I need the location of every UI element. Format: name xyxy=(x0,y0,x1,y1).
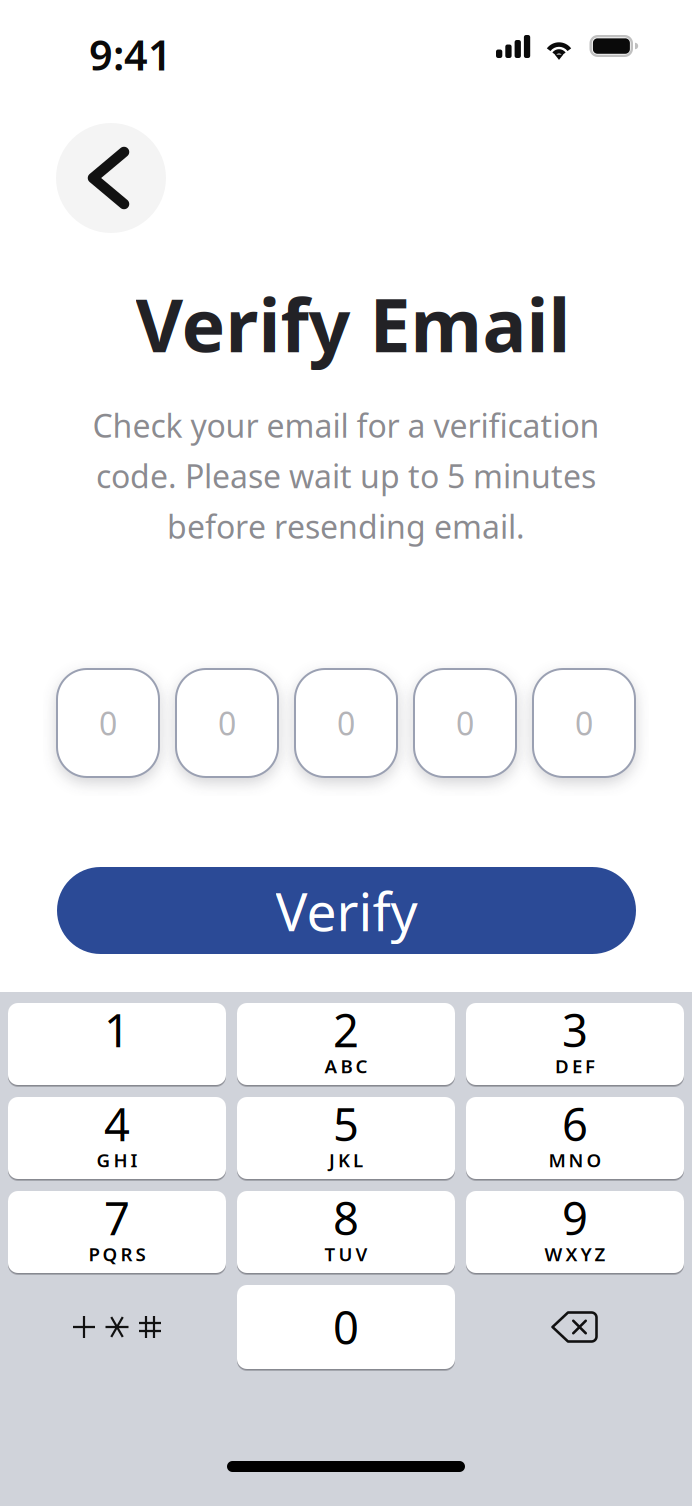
button[interactable]: Back xyxy=(56,123,166,233)
button[interactable]: Plus, star, pound xyxy=(8,1286,226,1368)
staticText: 8 xyxy=(333,1187,359,1248)
staticText: before resending email. xyxy=(167,505,525,547)
staticText: DEF xyxy=(555,1054,595,1078)
button[interactable]: 3 xyxy=(466,1003,684,1085)
button[interactable]: 5 xyxy=(237,1097,455,1179)
staticText: 0 xyxy=(456,702,474,744)
staticText: JKL xyxy=(329,1148,363,1172)
staticText: 0 xyxy=(333,1297,359,1357)
staticText: 5 xyxy=(333,1093,359,1154)
staticText: 3 xyxy=(562,999,588,1060)
button[interactable]: Verify xyxy=(57,867,636,954)
button[interactable]: 7 xyxy=(8,1191,226,1273)
staticText: Verify Email xyxy=(135,275,570,372)
staticText: 4 xyxy=(104,1093,130,1154)
staticText: code. Please wait up to 5 minutes xyxy=(96,454,596,497)
staticText: 0 xyxy=(99,702,117,744)
staticText: Verify xyxy=(275,875,417,946)
staticText: 0 xyxy=(218,702,236,744)
button[interactable]: 4 xyxy=(8,1097,226,1179)
staticText: Check your email for a verification xyxy=(92,404,599,446)
staticText: 9:41 xyxy=(89,27,172,82)
button[interactable]: 1 xyxy=(8,1003,226,1085)
staticText: 6 xyxy=(562,1093,588,1154)
staticText: MNO xyxy=(548,1148,601,1172)
staticText: WXYZ xyxy=(544,1242,605,1266)
button[interactable]: 2 xyxy=(237,1003,455,1085)
button[interactable]: 0 xyxy=(237,1285,455,1369)
button[interactable]: 8 xyxy=(237,1191,455,1273)
staticText: 7 xyxy=(104,1187,130,1248)
staticText: 2 xyxy=(333,999,359,1060)
staticText: 1 xyxy=(104,999,130,1060)
button[interactable]: 6 xyxy=(466,1097,684,1179)
staticText: PQRS xyxy=(88,1242,145,1266)
button[interactable]: Delete xyxy=(466,1286,684,1368)
staticText: TUV xyxy=(324,1242,367,1266)
staticText: ABC xyxy=(324,1054,367,1078)
staticText: 0 xyxy=(337,702,355,744)
staticText: 0 xyxy=(575,702,593,744)
staticText: GHI xyxy=(96,1148,137,1172)
staticText: 9 xyxy=(562,1187,588,1248)
button[interactable]: 9 xyxy=(466,1191,684,1273)
